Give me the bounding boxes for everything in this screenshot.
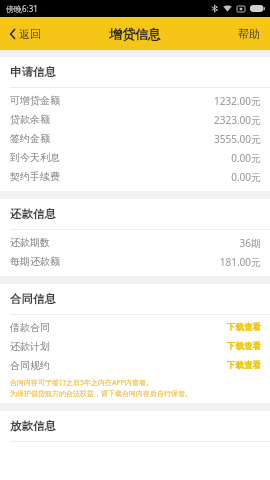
staticText: 借款合同 <box>10 321 50 334</box>
button[interactable]: 帮助 <box>228 17 270 50</box>
staticText: 3555.00元 <box>214 132 261 146</box>
staticText: 181.00元 <box>219 255 261 269</box>
staticText: 帮助 <box>238 27 260 41</box>
staticText: 返回 <box>19 27 41 41</box>
staticText: 2323.00元 <box>214 113 261 127</box>
staticText: 傍晚6:31 <box>6 3 38 14</box>
staticText: 合同规约 <box>10 359 50 372</box>
staticText: 每期还款额 <box>10 255 60 268</box>
staticText: 合同内容可于签订之后5年之内在APP内查看。 <box>10 378 153 388</box>
staticText: 1232.00元 <box>214 94 261 108</box>
staticText: 签约金额 <box>10 132 50 145</box>
staticText: 还款信息 <box>10 207 56 221</box>
staticText: 下载查看 <box>227 341 261 352</box>
staticText: 下载查看 <box>227 360 261 371</box>
staticText: 0.00元 <box>231 170 261 184</box>
staticText: 还款计划 <box>10 340 50 353</box>
staticText: 增贷信息 <box>109 26 161 42</box>
staticText: 契约手续费 <box>10 170 60 183</box>
staticText: 到今天利息 <box>10 151 60 164</box>
button[interactable]: 返回 <box>0 17 51 50</box>
button[interactable]: 借款合同 <box>0 318 270 337</box>
button[interactable]: 还款计划 <box>0 337 270 356</box>
button[interactable]: 合同规约 <box>0 356 270 375</box>
staticText: 为保护借贷双方的合法权益，请下载合同内容后自行保管。 <box>10 389 192 398</box>
staticText: 放款信息 <box>10 419 56 433</box>
staticText: 合同信息 <box>10 292 56 306</box>
staticText: 申请信息 <box>10 65 56 79</box>
staticText: 下载查看 <box>227 322 261 333</box>
staticText: 贷款余额 <box>10 113 50 126</box>
staticText: 0.00元 <box>231 151 261 165</box>
staticText: 可增贷金额 <box>10 94 60 107</box>
staticText: 36期 <box>239 236 261 250</box>
staticText: 还款期数 <box>10 236 50 249</box>
